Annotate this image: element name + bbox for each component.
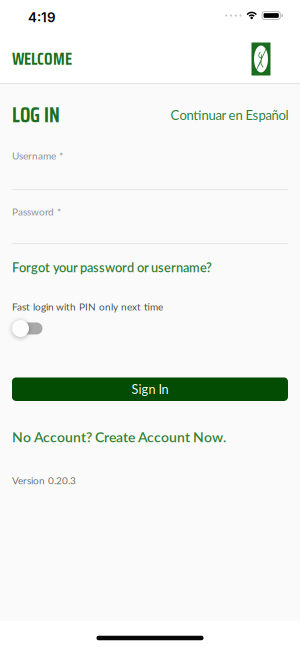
staticText: Version 0.20.3 — [12, 474, 76, 486]
staticText: Sign In — [131, 382, 168, 397]
staticText: LOG IN — [12, 99, 60, 131]
button[interactable]: Continuar en Español — [170, 107, 288, 123]
staticText: No Account? Create Account Now. — [12, 428, 226, 445]
button[interactable]: No Account? Create Account Now. — [12, 428, 226, 445]
button[interactable]: Forgot your password or username? — [12, 260, 212, 275]
staticText: 4:19 — [28, 9, 56, 25]
staticText: Continuar en Español — [170, 107, 288, 123]
staticText: Password * — [12, 206, 61, 218]
button[interactable]: Sign In — [12, 377, 288, 401]
staticText: Username * — [12, 150, 63, 162]
staticText: Forgot your password or username? — [12, 260, 212, 275]
staticText: WELCOME — [12, 46, 72, 72]
button[interactable]: Fast login with PIN only next time — [12, 319, 43, 338]
staticText: Fast login with PIN only next time — [12, 301, 163, 313]
